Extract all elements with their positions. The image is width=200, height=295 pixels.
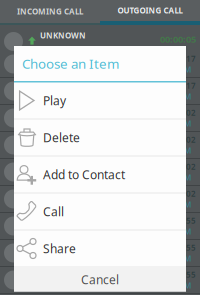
staticText: 02:17 xyxy=(174,53,196,64)
staticText: PM xyxy=(179,253,191,264)
staticText: 02:02 xyxy=(174,161,196,172)
button[interactable]: 01:55 xyxy=(0,240,200,267)
staticText: 01:55 xyxy=(174,269,196,280)
staticText: 02:17 xyxy=(174,80,196,91)
staticText: PM xyxy=(179,145,191,156)
staticText: PM xyxy=(179,226,191,237)
staticText: 02:02 xyxy=(174,134,196,145)
button[interactable]: 02:02 xyxy=(0,132,200,159)
staticText: PM xyxy=(179,118,191,129)
staticText: INCOMING CALL xyxy=(17,6,83,17)
button[interactable]: OUTGOING CALL xyxy=(100,0,200,25)
button[interactable]: 02:02 xyxy=(0,159,200,186)
staticText: PM xyxy=(179,172,191,183)
button[interactable]: Call xyxy=(14,193,186,230)
staticText: 01:55 xyxy=(174,215,196,226)
staticText: OUTGOING CALL xyxy=(117,5,182,16)
staticText: Share xyxy=(43,240,76,256)
staticText: PM xyxy=(179,64,191,75)
staticText: 00:00:05 xyxy=(160,33,196,45)
button[interactable]: Add to Contact xyxy=(14,156,186,193)
staticText: 01:55 xyxy=(174,242,196,253)
button[interactable]: 02:02 xyxy=(0,186,200,213)
button[interactable]: 01:55 xyxy=(0,267,200,294)
button[interactable]: 02:02 xyxy=(0,105,200,132)
button[interactable]: Cancel xyxy=(14,267,186,291)
button[interactable]: 02:17 xyxy=(0,51,200,78)
staticText: UNKNOWN xyxy=(40,30,86,41)
staticText: 02:02 xyxy=(174,107,196,118)
staticText: Call xyxy=(43,203,64,219)
button[interactable]: Delete xyxy=(14,119,186,156)
staticText: Play xyxy=(43,92,66,108)
staticText: PM xyxy=(179,280,191,291)
staticText: 02:02 xyxy=(174,188,196,199)
button[interactable]: 01:55 xyxy=(0,213,200,240)
button[interactable]: INCOMING CALL xyxy=(0,0,100,25)
staticText: Delete xyxy=(43,129,80,145)
staticText: Cancel xyxy=(81,271,119,287)
staticText: PM xyxy=(179,91,191,102)
staticText: Add to Contact xyxy=(43,166,125,182)
button[interactable]: Play xyxy=(14,82,186,119)
button[interactable]: Share xyxy=(14,230,186,267)
button[interactable]: 02:17 xyxy=(0,78,200,105)
staticText: PM xyxy=(179,199,191,210)
staticText: Choose an Item xyxy=(22,55,119,72)
